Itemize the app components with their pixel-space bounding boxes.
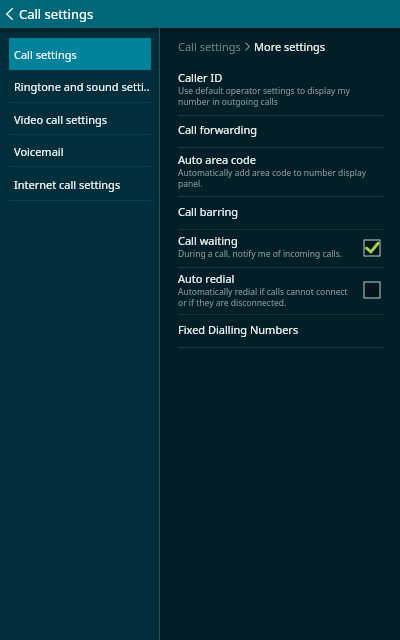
staticText: Auto redial: [178, 271, 235, 286]
staticText: Fixed Dialling Numbers: [178, 322, 299, 337]
button[interactable]: Fixed Dialling Numbers: [160, 315, 400, 348]
button[interactable]: Call forwarding: [160, 116, 400, 148]
staticText: Auto area code: [178, 152, 256, 167]
staticText: Call waiting: [178, 233, 238, 248]
button[interactable]: Call barring: [160, 197, 400, 230]
button[interactable]: Call settings: [0, 38, 159, 70]
staticText: Call settings: [19, 5, 94, 23]
staticText: Video call settings: [14, 112, 107, 127]
staticText: Automatically add area code to number di…: [178, 167, 383, 189]
button[interactable]: Voicemail: [0, 135, 159, 167]
staticText: Call barring: [178, 204, 239, 219]
button[interactable]: Call waiting: [364, 240, 380, 256]
staticText: Use default operator settings to display…: [178, 85, 383, 107]
staticText: During a call, notify me of incoming cal…: [178, 248, 342, 260]
staticText: More settings: [254, 39, 326, 54]
button[interactable]: Call waiting: [160, 230, 400, 268]
staticText: Automatically redial if calls cannot con…: [178, 286, 354, 308]
staticText: Call settings: [178, 39, 241, 54]
staticText: Internet call settings: [14, 177, 121, 192]
button[interactable]: Auto redial: [364, 282, 380, 298]
button[interactable]: Video call settings: [0, 103, 159, 135]
button[interactable]: Auto redial: [160, 268, 400, 315]
staticText: Call forwarding: [178, 122, 257, 137]
staticText: Caller ID: [178, 70, 223, 85]
button[interactable]: Caller ID: [160, 65, 400, 116]
staticText: Call settings: [14, 47, 77, 62]
button[interactable]: Navigate up: [0, 0, 19, 28]
staticText: Voicemail: [14, 144, 64, 159]
staticText: Ringtone and sound setti..: [14, 79, 150, 94]
button[interactable]: Internet call settings: [0, 168, 159, 201]
button[interactable]: Auto area code: [160, 148, 400, 197]
button[interactable]: Ringtone and sound setti..: [0, 70, 159, 103]
